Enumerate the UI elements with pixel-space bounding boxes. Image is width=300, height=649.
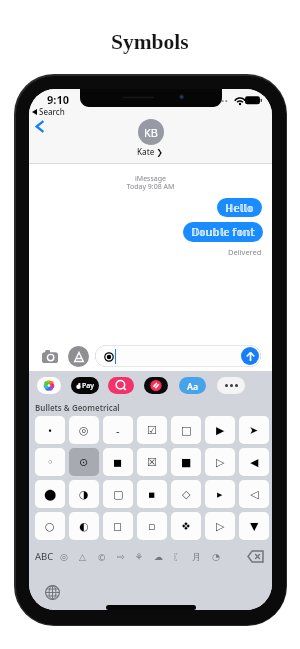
- staticText: Delivered: [228, 247, 262, 257]
- staticText: 9:10: [47, 92, 69, 107]
- button[interactable]: ‐: [103, 416, 133, 444]
- button[interactable]: ◐: [69, 512, 99, 540]
- button[interactable]: Photos: [37, 377, 61, 394]
- button[interactable]: ◀: [239, 448, 269, 476]
- staticText: •: [48, 423, 53, 438]
- button[interactable]: ▶: [205, 416, 235, 444]
- staticText: ABC: [35, 550, 54, 563]
- staticText: ◎: [60, 552, 68, 562]
- button[interactable]: ▼: [239, 512, 269, 540]
- button[interactable]: KB: [137, 119, 164, 157]
- staticText: ▪: [148, 488, 156, 501]
- button[interactable]: 月: [187, 548, 206, 565]
- button[interactable]: Back: [31, 117, 49, 135]
- button[interactable]: Apple Pay: [71, 377, 99, 394]
- button[interactable]: ☑: [137, 416, 167, 444]
- button[interactable]: Send: [241, 347, 259, 365]
- button[interactable]: ➤: [239, 416, 269, 444]
- button[interactable]: □: [171, 416, 201, 444]
- staticText: ⬤: [44, 488, 57, 501]
- staticText: Symbols: [111, 30, 189, 54]
- staticText: □: [181, 424, 192, 437]
- button[interactable]: ❖: [171, 512, 201, 540]
- staticText: 𝔻𝕠𝕦𝕓𝕝𝕖 𝕗𝕠𝕟𝕥: [191, 225, 255, 239]
- staticText: ◇: [182, 488, 191, 501]
- button[interactable]: ◇: [171, 480, 201, 508]
- button[interactable]: ◎: [54, 548, 73, 565]
- button[interactable]: Search: [32, 106, 65, 117]
- button[interactable]: ◦: [35, 448, 65, 476]
- button[interactable]: △: [73, 548, 92, 565]
- button[interactable]: ◼: [103, 448, 133, 476]
- staticText: ◔: [212, 552, 220, 562]
- button[interactable]: ▢: [103, 480, 133, 508]
- staticText: KB: [144, 125, 158, 140]
- staticText: ⚘: [135, 552, 144, 562]
- button[interactable]: ⬤: [35, 480, 65, 508]
- staticText: 月: [192, 551, 201, 562]
- button[interactable]: More apps: [217, 377, 245, 394]
- button[interactable]: ◎: [69, 416, 99, 444]
- staticText: ◻: [113, 520, 123, 533]
- staticText: ⇨: [117, 552, 125, 562]
- button[interactable]: ℍ𝕖𝕝𝕝𝕠: [217, 198, 262, 217]
- button[interactable]: ☁: [149, 548, 168, 565]
- staticText: Kate ❯: [137, 146, 164, 157]
- staticText: ▷: [216, 520, 225, 533]
- button[interactable]: ▷: [205, 448, 235, 476]
- button[interactable]: ▫: [137, 512, 167, 540]
- button[interactable]: ©: [92, 548, 111, 565]
- button[interactable]: ⊙: [69, 448, 99, 476]
- staticText: ▫: [148, 520, 156, 533]
- staticText: ◎: [79, 424, 89, 437]
- staticText: ⊙: [79, 456, 89, 469]
- staticText: ◐: [79, 520, 89, 533]
- button[interactable]: ◔: [206, 548, 225, 565]
- button[interactable]: 𝔻𝕠𝕦𝕓𝕝𝕖 𝕗𝕠𝕟𝕥: [183, 222, 263, 242]
- button[interactable]: ▷: [205, 512, 235, 540]
- staticText: ☒: [147, 456, 157, 469]
- staticText: ○: [45, 520, 55, 533]
- staticText: ❖: [181, 520, 191, 533]
- staticText: ◀: [250, 456, 259, 469]
- staticText: ▸: [217, 488, 223, 501]
- staticText: ◼: [113, 456, 123, 469]
- staticText: ◁: [250, 488, 259, 501]
- button[interactable]: •: [35, 416, 65, 444]
- button[interactable]: ■: [171, 448, 201, 476]
- staticText: Aa: [187, 380, 199, 392]
- staticText: ‐: [116, 423, 120, 438]
- button[interactable]: ○: [35, 512, 65, 540]
- button[interactable]: ◁: [239, 480, 269, 508]
- button[interactable]: Delete: [247, 550, 264, 563]
- button[interactable]: 〖: [168, 548, 187, 565]
- staticText: ◦: [47, 456, 54, 469]
- staticText: ©: [98, 551, 106, 563]
- button[interactable]: Change keyboard: [45, 585, 60, 600]
- button[interactable]: App Store: [68, 346, 89, 367]
- staticText: △: [79, 552, 86, 562]
- staticText: ☁: [154, 552, 163, 562]
- staticText: ◑: [79, 488, 89, 501]
- staticText: ▷: [216, 456, 225, 469]
- button[interactable]: Camera: [40, 347, 59, 366]
- button[interactable]: ◻: [103, 512, 133, 540]
- staticText: ➤: [249, 424, 259, 437]
- button[interactable]: ◑: [69, 480, 99, 508]
- button[interactable]: Aa: [179, 377, 206, 394]
- staticText: ▢: [113, 488, 124, 501]
- button[interactable]: ⚘: [130, 548, 149, 565]
- button[interactable]: ▪: [137, 480, 167, 508]
- button[interactable]: ▸: [205, 480, 235, 508]
- button[interactable]: ⇨: [111, 548, 130, 565]
- button[interactable]: Images: [108, 377, 134, 394]
- staticText: iMessage Today 9:08 AM: [29, 174, 272, 191]
- button[interactable]: Digital Touch: [144, 377, 168, 394]
- button[interactable]: Send: [95, 345, 261, 367]
- staticText: Bullets & Geometrical: [35, 402, 120, 413]
- button[interactable]: ☒: [137, 448, 167, 476]
- button[interactable]: ABC: [33, 548, 56, 565]
- staticText: 〖: [173, 551, 182, 562]
- staticText: ■: [181, 456, 192, 469]
- staticText: ▶: [216, 424, 225, 437]
